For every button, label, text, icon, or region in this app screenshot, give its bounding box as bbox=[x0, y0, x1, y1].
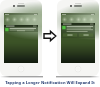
button[interactable]: Quick setting bbox=[32, 17, 37, 22]
button[interactable]: Quick setting bbox=[12, 17, 17, 22]
button[interactable]: Quick setting bbox=[62, 17, 67, 22]
button[interactable]: Quick setting bbox=[76, 17, 81, 22]
button[interactable]: Home bbox=[18, 66, 24, 72]
staticText: Tapping a Longer Notification Will Expan… bbox=[5, 80, 95, 85]
button[interactable]: Quick setting bbox=[69, 17, 74, 22]
button[interactable] bbox=[61, 23, 95, 38]
button[interactable] bbox=[4, 25, 38, 32]
button[interactable]: Quick setting bbox=[89, 17, 94, 22]
button[interactable]: Quick setting bbox=[5, 17, 10, 22]
button[interactable]: Home bbox=[75, 66, 81, 72]
button[interactable]: Quick setting bbox=[19, 17, 24, 22]
button[interactable]: Quick setting bbox=[25, 17, 30, 22]
button[interactable]: Quick setting bbox=[82, 17, 87, 22]
